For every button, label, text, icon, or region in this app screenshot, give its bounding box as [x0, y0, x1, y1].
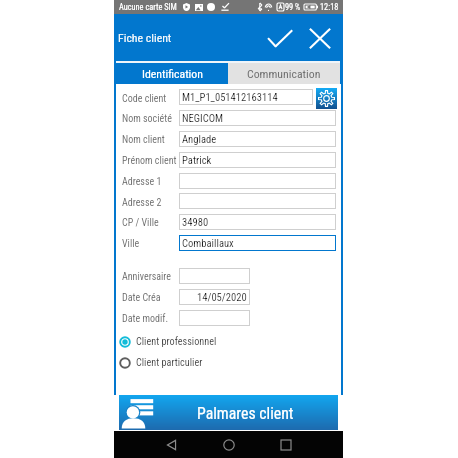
staticText: Code client: [122, 93, 167, 105]
staticText: Communication: [247, 67, 321, 81]
staticText: 14/05/2020: [197, 291, 247, 303]
staticText: Prénom client: [122, 155, 177, 167]
button[interactable]: Parametres: [316, 88, 337, 109]
button[interactable]: Communication: [228, 63, 340, 85]
staticText: NEGICOM: [182, 112, 224, 124]
staticText: Client professionnel: [136, 336, 217, 348]
staticText: Date Créa: [122, 292, 161, 304]
button[interactable]: Valider: [262, 20, 298, 56]
staticText: 12:18: [320, 2, 339, 12]
staticText: Adresse 1: [122, 176, 162, 188]
button[interactable]: [179, 268, 250, 284]
staticText: Client particulier: [136, 357, 203, 369]
button[interactable]: [179, 310, 250, 326]
staticText: Identification: [142, 67, 203, 81]
button[interactable]: Identification: [116, 63, 228, 85]
button[interactable]: Palmares client: [119, 395, 338, 430]
staticText: Nom société: [122, 113, 172, 125]
staticText: CP / Ville: [122, 217, 159, 229]
staticText: Ville: [122, 238, 140, 250]
button[interactable]: M1_P1_051412163114: [179, 89, 313, 105]
staticText: 34980: [182, 216, 209, 228]
button[interactable]: Accueil: [216, 432, 241, 457]
staticText: Anniversaire: [122, 271, 171, 283]
staticText: Patrick: [182, 154, 212, 166]
button[interactable]: 34980: [179, 214, 336, 230]
button[interactable]: Client professionnel: [119, 333, 279, 351]
button[interactable]: Patrick: [179, 152, 336, 168]
staticText: Combaillaux: [182, 237, 234, 249]
button[interactable]: [179, 193, 336, 209]
staticText: Palmares client: [197, 404, 294, 423]
staticText: Date modif.: [122, 313, 169, 325]
button[interactable]: Combaillaux: [179, 235, 336, 251]
button[interactable]: Annuler: [302, 20, 338, 56]
button[interactable]: Client particulier: [119, 354, 279, 372]
staticText: Adresse 2: [122, 197, 162, 209]
staticText: Anglade: [182, 133, 217, 145]
button[interactable]: [179, 173, 336, 189]
staticText: Aucune carte SIM: [119, 2, 177, 12]
button[interactable]: NEGICOM: [179, 110, 336, 126]
staticText: 99 %: [285, 2, 301, 12]
button[interactable]: 14/05/2020: [179, 289, 250, 305]
staticText: M1_P1_051412163114: [182, 91, 278, 103]
button[interactable]: Applications recentes: [273, 432, 298, 457]
button[interactable]: Anglade: [179, 131, 336, 147]
staticText: Fiche client: [118, 31, 172, 45]
staticText: Nom client: [122, 134, 165, 146]
button[interactable]: Retour: [159, 432, 184, 457]
